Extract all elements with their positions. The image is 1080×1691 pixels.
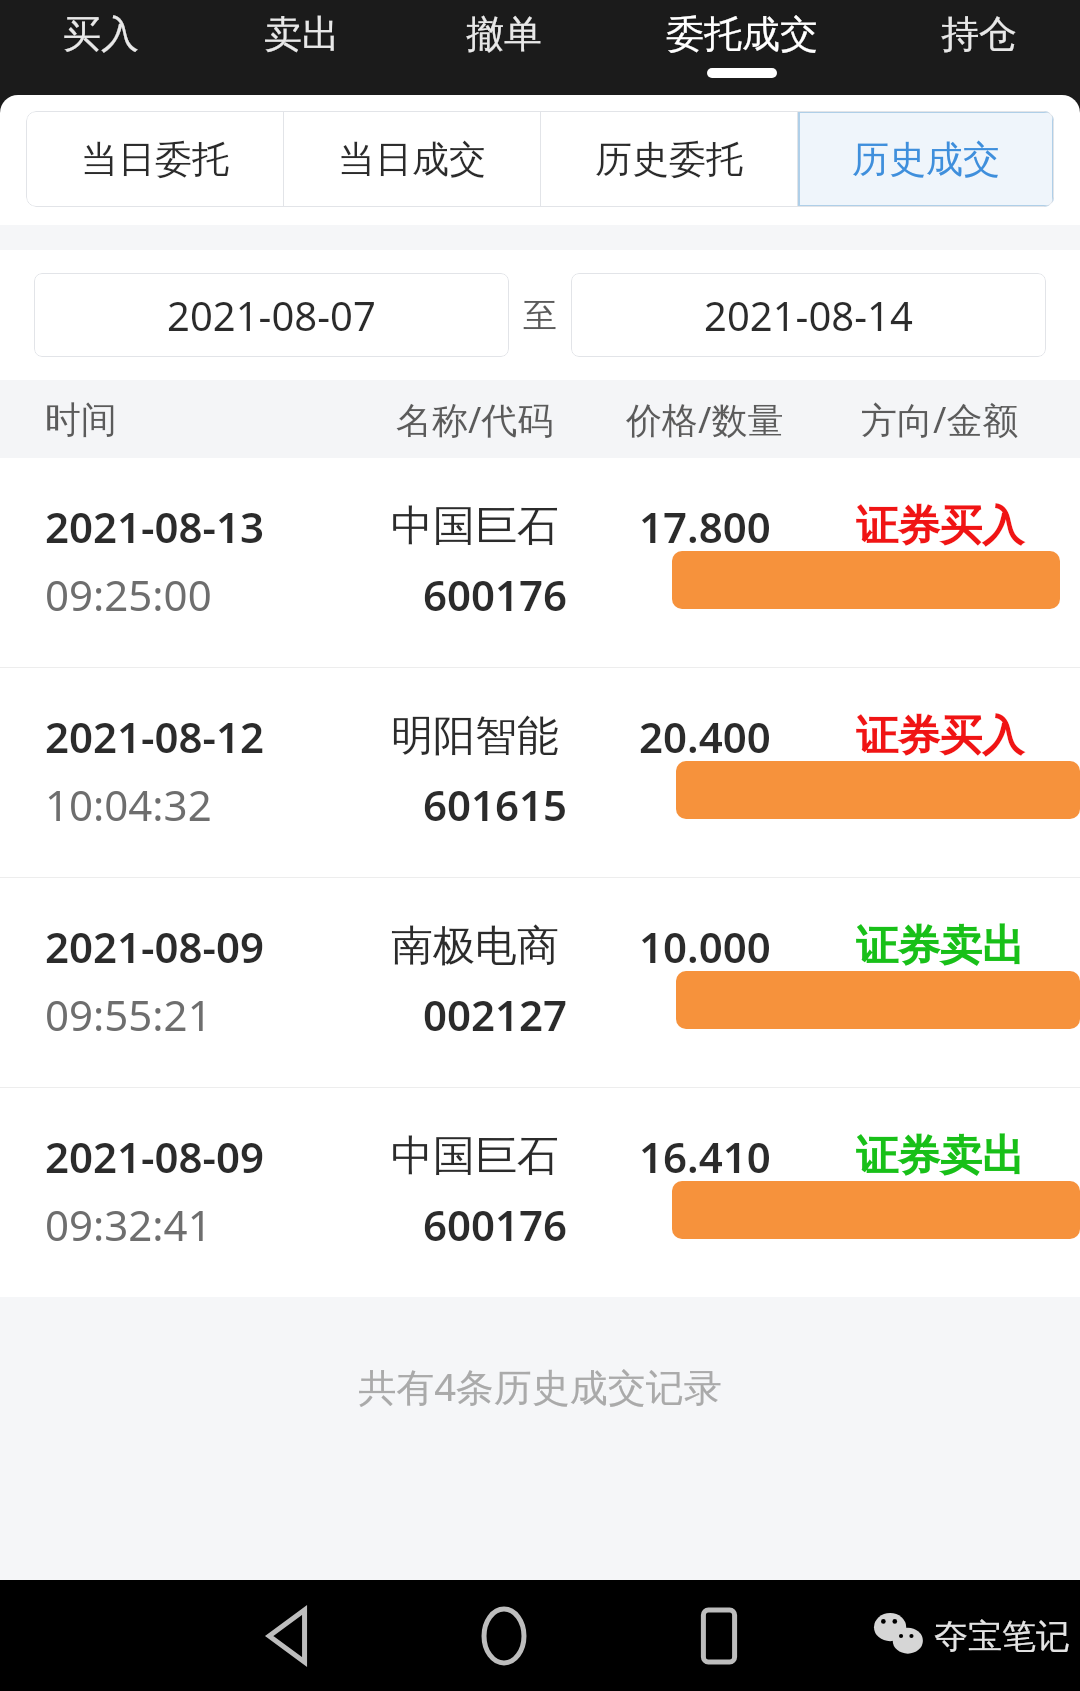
staticText: 卖出 (264, 10, 340, 58)
staticText: 夺宝笔记 (934, 1615, 1070, 1658)
staticText: 当日委托 (81, 136, 229, 183)
staticText: 20.400 (639, 708, 771, 765)
staticText: 历史委托 (595, 136, 743, 183)
staticText: 2021-08-09 (45, 1128, 265, 1185)
button[interactable]: 委托成交 (605, 0, 878, 88)
staticText: 名称/代码 (396, 395, 554, 444)
button[interactable]: 2021-08-09 (0, 1088, 1080, 1297)
button[interactable]: 当日委托 (26, 111, 283, 207)
staticText: 当日成交 (338, 136, 486, 183)
staticText: 至 (523, 294, 557, 337)
staticText: 2021-08-09 (45, 918, 265, 975)
staticText: 时间 (45, 397, 117, 442)
staticText: 证券卖出 (856, 1130, 1024, 1183)
button[interactable]: 2021-08-13 (0, 458, 1080, 667)
staticText: 10:04:32 (45, 776, 212, 833)
button[interactable]: 持仓 (878, 0, 1080, 88)
staticText: 中国巨石 (391, 500, 559, 553)
staticText: 2021-08-13 (45, 498, 265, 555)
staticText: 601615 (423, 776, 568, 833)
button[interactable]: 2021-08-12 (0, 668, 1080, 877)
button[interactable]: 2021-08-07 (34, 273, 509, 357)
staticText: 买入 (63, 10, 139, 58)
staticText: 600176 (423, 1196, 568, 1253)
staticText: 南极电商 (391, 920, 559, 973)
button[interactable]: 买入 (0, 0, 201, 88)
button[interactable]: Back (230, 1580, 350, 1691)
staticText: 09:25:00 (45, 566, 212, 623)
button[interactable]: Home (444, 1580, 564, 1691)
staticText: 2021-08-07 (167, 288, 376, 342)
staticText: 委托成交 (666, 10, 818, 58)
staticText: 历史成交 (852, 136, 1000, 183)
staticText: 10.000 (639, 918, 771, 975)
button[interactable]: 当日成交 (284, 111, 540, 207)
staticText: 证券卖出 (856, 920, 1024, 973)
staticText: 002127 (423, 986, 568, 1043)
staticText: 09:32:41 (45, 1196, 212, 1253)
staticText: 16.410 (639, 1128, 771, 1185)
staticText: 方向/金额 (861, 395, 1019, 444)
button[interactable]: 撤单 (403, 0, 605, 88)
staticText: 2021-08-12 (45, 708, 265, 765)
button[interactable]: 2021-08-09 (0, 878, 1080, 1087)
button[interactable]: 历史成交 (798, 111, 1054, 207)
staticText: 共有4条历史成交记录 (0, 1360, 1080, 1412)
staticText: 持仓 (941, 10, 1017, 58)
button[interactable]: 2021-08-14 (571, 273, 1046, 357)
staticText: 中国巨石 (391, 1130, 559, 1183)
staticText: 价格/数量 (626, 395, 784, 444)
staticText: 撤单 (466, 10, 542, 58)
staticText: 证券买入 (856, 710, 1024, 763)
staticText: 09:55:21 (45, 986, 212, 1043)
button[interactable]: Recent apps (659, 1580, 779, 1691)
staticText: 17.800 (639, 498, 771, 555)
staticText: 2021-08-14 (704, 288, 913, 342)
staticText: 证券买入 (856, 500, 1024, 553)
button[interactable]: 历史委托 (541, 111, 797, 207)
staticText: 明阳智能 (391, 710, 559, 763)
button[interactable]: 卖出 (201, 0, 403, 88)
staticText: 600176 (423, 566, 568, 623)
